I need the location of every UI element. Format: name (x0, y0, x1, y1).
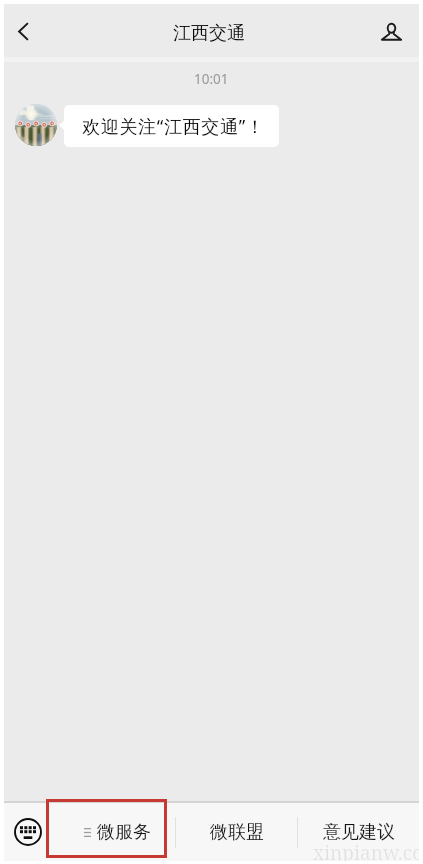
button[interactable]: 微服务 (54, 803, 175, 861)
staticText: 微联盟 (210, 821, 264, 844)
button[interactable]: Show keyboard (4, 803, 54, 861)
button[interactable]: 意见建议 (298, 803, 419, 861)
button[interactable]: Avatar of 江西交通 (15, 104, 57, 146)
button[interactable]: Contact profile (377, 4, 419, 57)
staticText: 微服务 (97, 821, 151, 844)
staticText: 欢迎关注“江西交通”！ (82, 114, 265, 139)
staticText: 意见建议 (323, 821, 395, 844)
button[interactable]: Back (4, 4, 46, 57)
staticText: xinpianw.com (313, 840, 423, 864)
staticText: 10:01 (194, 70, 229, 88)
button[interactable]: 欢迎关注“江西交通”！ (64, 105, 279, 147)
button[interactable]: 微联盟 (176, 803, 297, 861)
staticText: 江西交通 (173, 22, 245, 45)
